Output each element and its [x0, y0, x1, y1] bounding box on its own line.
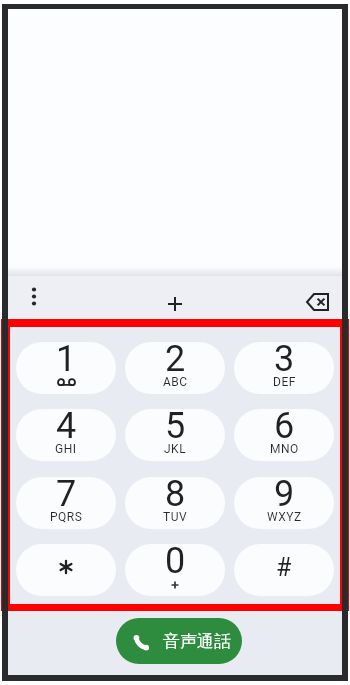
button[interactable]: 2 [125, 342, 225, 394]
staticText: 5 [165, 409, 186, 447]
staticText: 4 [56, 409, 77, 447]
button[interactable] [161, 290, 189, 318]
button[interactable]: 7 [16, 477, 116, 529]
button[interactable]: 6 [234, 409, 334, 461]
staticText: 8 [165, 477, 186, 515]
staticText: 3 [274, 342, 295, 380]
button[interactable] [16, 544, 116, 596]
staticText: 9 [274, 477, 295, 515]
staticText: # [276, 553, 292, 582]
staticText: JKL [164, 442, 187, 456]
button[interactable]: 8 [125, 477, 225, 529]
staticText: 6 [274, 409, 295, 447]
staticText: MNO [270, 442, 299, 456]
staticText: TUV [163, 510, 188, 524]
staticText: WXYZ [267, 510, 302, 524]
staticText: GHI [55, 442, 77, 456]
button[interactable] [303, 288, 333, 316]
button[interactable]: 音声通話 [116, 618, 242, 664]
staticText: 0 [165, 544, 186, 582]
button[interactable] [20, 282, 48, 310]
staticText: 2 [165, 342, 186, 380]
button[interactable]: 4 [16, 409, 116, 461]
button[interactable]: # [234, 544, 334, 596]
staticText: ABC [163, 375, 188, 389]
staticText: DEF [273, 375, 296, 389]
staticText: 7 [56, 477, 77, 515]
button[interactable]: 3 [234, 342, 334, 394]
staticText: 音声通話 [163, 631, 231, 652]
button[interactable]: 5 [125, 409, 225, 461]
button[interactable]: 1 [16, 342, 116, 394]
staticText: 1 [56, 342, 77, 380]
button[interactable]: 0 [125, 544, 225, 596]
button[interactable]: 9 [234, 477, 334, 529]
staticText: PQRS [50, 510, 83, 524]
